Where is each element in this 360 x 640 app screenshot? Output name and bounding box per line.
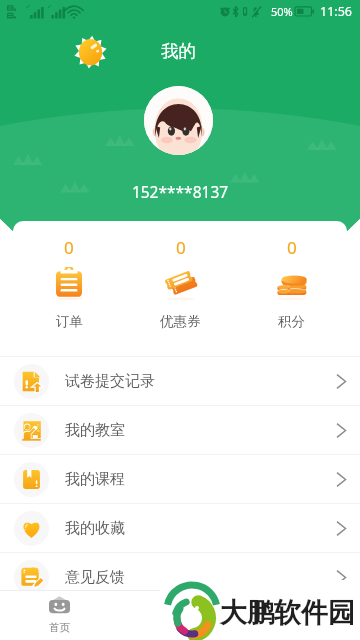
button[interactable]: 我的课程 (0, 455, 360, 503)
staticText: 0 (176, 236, 186, 259)
button[interactable]: 0 (236, 221, 347, 342)
staticText: 我的课程 (65, 470, 125, 489)
staticText: 我的 (161, 40, 196, 62)
staticText: 0 (287, 236, 297, 259)
staticText: 我的收藏 (65, 519, 125, 538)
staticText: 我的教室 (65, 421, 125, 440)
staticText: 11:56 (320, 3, 352, 20)
button[interactable]: 意见反馈 (0, 553, 360, 601)
button[interactable]: 课程 (119, 591, 238, 640)
button[interactable]: 试卷提交记录 (0, 357, 360, 405)
staticText: 首页 (49, 621, 70, 634)
button[interactable]: 首页 (0, 591, 119, 640)
staticText: 50% (271, 4, 293, 19)
button[interactable]: 0 (125, 221, 236, 342)
staticText: 试卷提交记录 (65, 372, 155, 391)
button[interactable]: 我的 (238, 591, 360, 640)
staticText: 课程 (168, 621, 189, 634)
button[interactable]: Profile photo (144, 86, 213, 155)
staticText: 0 (64, 236, 74, 259)
staticText: 我的 (289, 621, 310, 634)
staticText: 152****8137 (0, 181, 360, 202)
staticText: 积分 (278, 313, 305, 330)
button[interactable]: Logo (74, 35, 107, 68)
button[interactable]: 我的教室 (0, 406, 360, 454)
staticText: 优惠券 (160, 313, 201, 330)
button[interactable] (0, 602, 360, 640)
button[interactable]: 我的收藏 (0, 504, 360, 552)
button[interactable]: 0 (13, 221, 125, 342)
staticText: 大鹏软件园 (220, 596, 355, 630)
staticText: 意见反馈 (65, 568, 125, 587)
staticText: 订单 (56, 313, 83, 330)
